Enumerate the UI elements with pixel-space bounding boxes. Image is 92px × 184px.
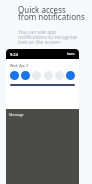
- staticText: Wed, Apr 3: [10, 63, 28, 68]
- button[interactable]: [55, 71, 64, 80]
- staticText: 9:24: [10, 52, 18, 57]
- staticText: Message: [9, 112, 24, 117]
- button[interactable]: [10, 71, 19, 80]
- staticText: You can use app notifications to recogni…: [18, 29, 78, 46]
- button[interactable]: [21, 71, 30, 80]
- staticText: icons: [67, 52, 75, 56]
- staticText: Quick access from notifications: [18, 4, 85, 23]
- button[interactable]: [66, 71, 75, 80]
- button[interactable]: [44, 71, 53, 80]
- button[interactable]: [32, 71, 41, 80]
